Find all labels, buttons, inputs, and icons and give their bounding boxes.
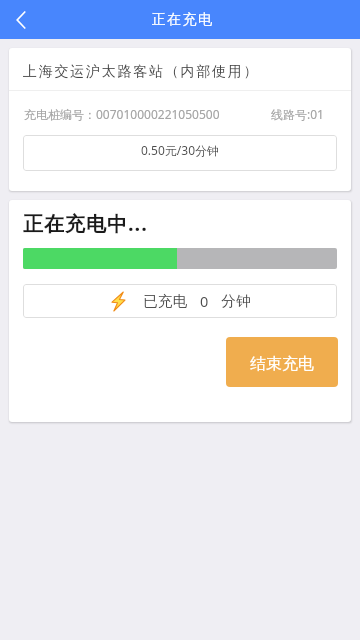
- staticText: 正在充电: [152, 11, 214, 29]
- button[interactable]: Back: [0, 0, 41, 39]
- staticText: 正在充电中...: [23, 210, 148, 237]
- staticText: 充电桩编号：007010000221050500: [24, 106, 220, 122]
- staticText: 线路号:01: [271, 106, 324, 122]
- button[interactable]: 结束充电: [226, 337, 338, 387]
- staticText: 0: [200, 291, 209, 311]
- staticText: 上海交运沪太路客站（内部使用）: [23, 63, 260, 81]
- staticText: 0.50元/30分钟: [141, 142, 220, 158]
- staticText: 已充电: [143, 292, 188, 310]
- staticText: 分钟: [221, 292, 251, 310]
- staticText: 结束充电: [250, 354, 314, 374]
